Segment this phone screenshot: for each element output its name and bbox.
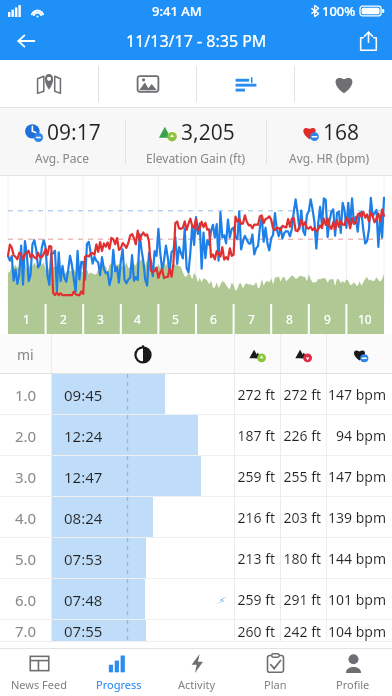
button[interactable]: Map [0, 60, 98, 108]
staticText: 1.0 [15, 385, 37, 405]
staticText: 272 ft [283, 385, 321, 404]
staticText: 255 ft [283, 467, 321, 486]
staticText: 291 ft [283, 590, 321, 609]
button[interactable]: Profile [314, 648, 392, 696]
staticText: 07:53 [64, 549, 103, 569]
staticText: 147 bpm [328, 385, 386, 404]
staticText: 11/13/17 - 8:35 PM [126, 30, 267, 52]
button[interactable]: 5.0 [0, 538, 392, 579]
staticText: 168 [323, 118, 360, 147]
staticText: 139 bpm [328, 508, 386, 527]
staticText: Avg. HR (bpm) [289, 150, 370, 166]
staticText: Profile [336, 677, 370, 692]
staticText: 9:41 AM [152, 2, 202, 20]
staticText: 5 [172, 311, 179, 327]
staticText: 12:47 [64, 467, 103, 487]
staticText: Plan [264, 677, 287, 692]
staticText: 09:17 [47, 118, 101, 147]
staticText: 7.0 [15, 621, 37, 641]
staticText: 07:48 [64, 590, 103, 610]
staticText: Activity [178, 677, 216, 692]
staticText: 94 bpm [336, 426, 386, 445]
staticText: 2.0 [15, 426, 37, 446]
staticText: 242 ft [283, 622, 321, 641]
staticText: 6.0 [15, 590, 37, 610]
button[interactable]: 4.0 [0, 497, 392, 538]
staticText: 4.0 [15, 508, 37, 528]
staticText: 3.0 [15, 467, 37, 487]
staticText: 101 bpm [328, 590, 386, 609]
staticText: 213 ft [237, 549, 275, 568]
staticText: 3,205 [181, 118, 235, 147]
button[interactable]: Plan [236, 648, 314, 696]
staticText: 2 [60, 311, 67, 327]
staticText: 4 [134, 311, 141, 327]
button[interactable]: Back [0, 22, 52, 60]
staticText: 144 bpm [328, 549, 386, 568]
staticText: mi [17, 345, 34, 364]
button[interactable]: Splits [197, 60, 294, 108]
staticText: 07:55 [64, 621, 103, 641]
staticText: 187 ft [237, 426, 275, 445]
staticText: 3 [97, 311, 104, 327]
button[interactable]: 3.0 [0, 456, 392, 497]
staticText: 7 [248, 311, 255, 327]
button[interactable]: News Feed [0, 648, 79, 696]
staticText: 09:45 [64, 385, 103, 405]
button[interactable]: 7.0 [0, 620, 392, 642]
button[interactable]: Photos [99, 60, 196, 108]
button[interactable]: Progress [79, 648, 158, 696]
staticText: Progress [96, 677, 142, 692]
button[interactable]: 6.0 [0, 579, 392, 620]
staticText: News Feed [11, 677, 68, 692]
staticText: 260 ft [237, 622, 275, 641]
staticText: 1 [23, 311, 30, 327]
staticText: 08:24 [64, 508, 103, 528]
staticText: Avg. Pace [35, 150, 90, 166]
button[interactable]: 3,205 [126, 108, 266, 176]
staticText: 259 ft [237, 467, 275, 486]
staticText: Elevation Gain (ft) [146, 150, 246, 166]
staticText: 10 [358, 311, 372, 327]
staticText: 147 bpm [328, 467, 386, 486]
staticText: 104 bpm [328, 622, 386, 641]
staticText: 100% [322, 2, 356, 20]
button[interactable]: 1.0 [0, 374, 392, 415]
staticText: 8 [286, 311, 293, 327]
button[interactable]: 09:17 [0, 108, 125, 176]
staticText: 6 [210, 311, 217, 327]
staticText: 272 ft [237, 385, 275, 404]
staticText: 12:24 [64, 426, 103, 446]
button[interactable]: Heart rate [295, 60, 392, 108]
staticText: 216 ft [237, 508, 275, 527]
staticText: 180 ft [283, 549, 321, 568]
staticText: 226 ft [283, 426, 321, 445]
button[interactable]: Activity [158, 648, 236, 696]
staticText: 203 ft [283, 508, 321, 527]
button[interactable]: 168 [267, 108, 392, 176]
button[interactable]: Share [344, 22, 392, 60]
staticText: 9 [324, 311, 331, 327]
staticText: 5.0 [15, 549, 37, 569]
staticText: 259 ft [237, 590, 275, 609]
button[interactable]: 2.0 [0, 415, 392, 456]
